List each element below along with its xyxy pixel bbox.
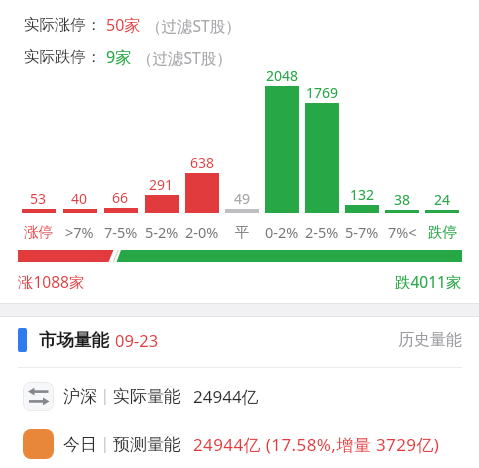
button[interactable]: 历史量能 — [0, 328, 462, 352]
staticText: 2-5% — [305, 222, 339, 242]
staticText: 40 — [71, 189, 88, 208]
staticText: 50家 — [106, 14, 141, 36]
staticText: 38 — [394, 190, 411, 209]
staticText: 预测量能 — [113, 434, 181, 455]
staticText: 7-5% — [104, 222, 138, 242]
staticText: 涨1088家 — [18, 271, 85, 289]
staticText: 2-0% — [185, 222, 219, 242]
staticText: （过滤ST股） — [146, 15, 241, 36]
staticText: 涨停 — [24, 223, 53, 241]
staticText: >7% — [65, 222, 94, 242]
staticText: 实际量能 — [113, 386, 181, 407]
staticText: 9家 — [106, 46, 132, 68]
staticText: 5-2% — [145, 222, 179, 242]
staticText: 09-23 — [115, 329, 159, 351]
staticText: 5-7% — [345, 222, 379, 242]
staticText: 24944亿 — [193, 385, 259, 408]
staticText: 24 — [434, 190, 451, 209]
staticText: 跌停 — [428, 223, 457, 241]
staticText: 132 — [350, 185, 375, 204]
staticText: 7%< — [388, 222, 417, 242]
staticText: 66 — [112, 188, 129, 207]
staticText: ｜ — [97, 386, 113, 406]
staticText: （过滤ST股） — [137, 47, 232, 68]
staticText: 实际涨停： — [24, 15, 102, 35]
staticText: 0-2% — [265, 222, 299, 242]
staticText: 市场量能 — [39, 329, 109, 351]
staticText: 今日 — [63, 434, 97, 455]
staticText: 638 — [190, 153, 215, 172]
staticText: 沪深 — [63, 386, 97, 407]
staticText: 53 — [30, 189, 47, 208]
staticText: 24944亿 (17.58%,增量 3729亿) — [193, 433, 440, 456]
staticText: 平 — [235, 223, 250, 241]
staticText: 2048 — [266, 66, 299, 85]
button[interactable]: 沪深 — [23, 378, 463, 414]
staticText: 历史量能 — [398, 330, 462, 350]
button[interactable]: 今日 — [23, 426, 463, 462]
staticText: 1769 — [306, 83, 339, 102]
staticText: 实际跌停： — [24, 47, 102, 67]
staticText: 49 — [234, 189, 251, 208]
staticText: 291 — [149, 175, 174, 194]
staticText: 跌4011家 — [395, 271, 462, 289]
staticText: ｜ — [97, 434, 113, 454]
